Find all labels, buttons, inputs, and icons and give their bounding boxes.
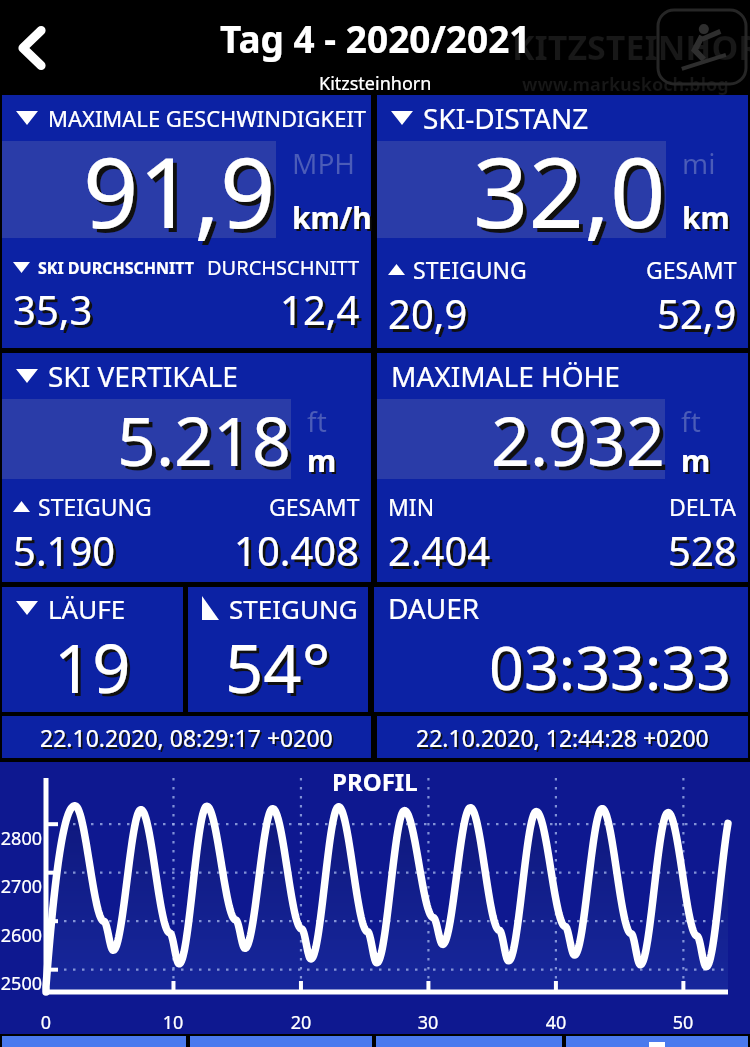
staticText: m <box>307 440 337 479</box>
staticText: 40 <box>526 1010 586 1035</box>
staticText: 10.408 <box>237 526 363 580</box>
staticText: km/h <box>294 199 373 240</box>
staticText: 32,0 <box>473 124 666 256</box>
staticText: 5.190 <box>16 526 119 580</box>
staticText: 5.218 <box>121 397 295 490</box>
staticText: DELTA <box>669 491 737 522</box>
staticText: m <box>683 442 713 481</box>
button[interactable]: MAXIMALE GESCHWINDIGKEIT <box>2 95 371 348</box>
staticText: ft <box>307 402 327 440</box>
button[interactable]: LÄUFE <box>2 587 183 712</box>
staticText: MIN <box>388 491 435 522</box>
button[interactable]: Back <box>4 0 60 95</box>
staticText: 2500 <box>0 971 42 996</box>
staticText: 22.10.2020, 08:29:17 +0200 <box>40 722 333 753</box>
staticText: 12,4 <box>280 282 360 336</box>
button[interactable]: Statistik <box>566 1036 748 1047</box>
staticText: 528 <box>668 523 737 577</box>
staticText: 2800 <box>0 826 42 851</box>
staticText: 32,0 <box>477 128 670 260</box>
staticText: km/h <box>292 197 371 238</box>
staticText: www.markuskoch.blog <box>522 72 729 97</box>
staticText: SKI DURCHSCHNITT <box>38 257 194 279</box>
staticText: 12,4 <box>283 285 363 339</box>
staticText: 19 <box>57 624 134 715</box>
staticText: GESAMT <box>269 491 360 522</box>
button[interactable]: 22.10.2020, 12:44:28 +0200 <box>377 716 748 758</box>
staticText: 5.190 <box>13 523 116 577</box>
staticText: SKI-DISTANZ <box>423 99 589 137</box>
staticText: LÄUFE <box>48 591 126 626</box>
staticText: 2.404 <box>388 523 491 577</box>
staticText: STEIGUNG <box>229 591 358 626</box>
staticText: 10 <box>143 1010 203 1035</box>
staticText: 2.404 <box>391 526 494 580</box>
staticText: 54° <box>228 624 334 715</box>
staticText: m <box>681 440 711 479</box>
staticText: STEIGUNG <box>413 254 527 285</box>
button[interactable]: SKI-DISTANZ <box>377 95 748 348</box>
staticText: 19 <box>54 621 131 712</box>
staticText: 03:33:33 <box>492 628 735 711</box>
staticText: m <box>309 442 339 481</box>
staticText: 528 <box>671 526 740 580</box>
staticText: 5.218 <box>117 393 291 486</box>
staticText: km <box>682 197 730 238</box>
button[interactable]: MAXIMALE HÖHE <box>377 353 748 582</box>
staticText: 22.10.2020, 08:29:17 +0200 <box>42 724 335 755</box>
staticText: 0 <box>16 1010 76 1035</box>
staticText: PROFIL <box>332 765 418 798</box>
staticText: 2.932 <box>495 397 669 490</box>
staticText: 52,9 <box>657 286 737 340</box>
staticText: mi <box>682 144 716 182</box>
staticText: 20 <box>271 1010 331 1035</box>
staticText: 2700 <box>0 874 42 899</box>
staticText: 22.10.2020, 12:44:28 +0200 <box>418 724 711 755</box>
button[interactable]: STEIGUNG <box>188 587 368 712</box>
staticText: DURCHSCHNITT <box>207 254 360 281</box>
staticText: km <box>684 199 732 240</box>
staticText: 2.932 <box>491 393 665 486</box>
staticText: 35,3 <box>16 285 96 339</box>
staticText: 20,9 <box>391 289 471 343</box>
staticText: STEIGUNG <box>38 491 152 522</box>
button[interactable]: DAUER <box>374 587 748 712</box>
staticText: 20,9 <box>388 286 468 340</box>
staticText: 50 <box>653 1010 713 1035</box>
staticText: 54° <box>225 621 331 712</box>
staticText: Kitzsteinhorn <box>319 71 432 96</box>
staticText: MAXIMALE GESCHWINDIGKEIT <box>48 103 367 133</box>
staticText: 91,9 <box>83 124 276 256</box>
staticText: 30 <box>398 1010 458 1035</box>
staticText: 22.10.2020, 12:44:28 +0200 <box>416 722 709 753</box>
staticText: 03:33:33 <box>489 625 732 708</box>
staticText: MPH <box>292 144 356 182</box>
staticText: DAUER <box>388 589 480 627</box>
staticText: 2600 <box>0 923 42 948</box>
staticText: 91,9 <box>87 128 280 260</box>
staticText: SKI VERTIKALE <box>48 357 238 395</box>
staticText: GESAMT <box>646 254 737 285</box>
button[interactable]: SKI VERTIKALE <box>2 353 371 582</box>
staticText: 35,3 <box>13 282 93 336</box>
button[interactable]: 22.10.2020, 08:29:17 +0200 <box>2 716 371 758</box>
staticText: 10.408 <box>234 523 360 577</box>
staticText: ft <box>681 402 701 440</box>
staticText: KITZSTEINHORN <box>512 24 750 70</box>
staticText: MAXIMALE HÖHE <box>391 357 620 395</box>
staticText: Tag 4 - 2020/2021 <box>220 13 531 63</box>
staticText: 52,9 <box>660 289 740 343</box>
